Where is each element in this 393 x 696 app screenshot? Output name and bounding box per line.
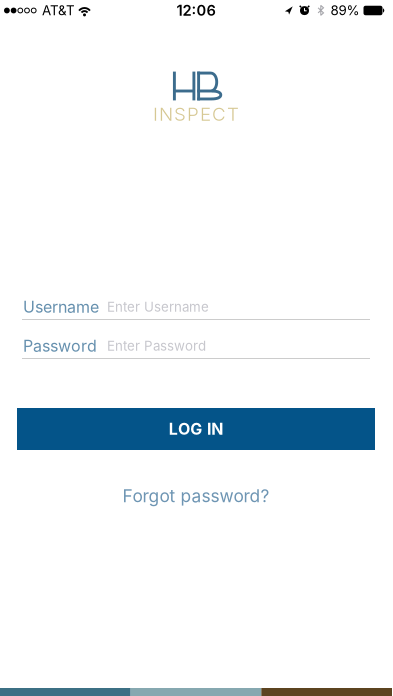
staticText: Enter Username bbox=[107, 299, 209, 315]
staticText: Enter Password bbox=[107, 338, 206, 354]
staticText: E bbox=[200, 103, 211, 125]
staticText: 89% bbox=[330, 3, 359, 18]
staticText: S bbox=[174, 103, 186, 125]
button[interactable]: Password bbox=[0, 338, 392, 359]
staticText: Forgot password? bbox=[122, 486, 269, 506]
staticText: Username bbox=[23, 298, 99, 316]
staticText: N bbox=[159, 103, 173, 125]
button[interactable]: Forgot password? bbox=[122, 486, 269, 506]
staticText: 12:06 bbox=[176, 2, 215, 19]
staticText: C bbox=[212, 103, 226, 125]
staticText: T bbox=[227, 103, 239, 125]
staticText: AT&T bbox=[42, 3, 75, 18]
button[interactable]: Username bbox=[0, 299, 392, 320]
staticText: P bbox=[187, 103, 199, 125]
button[interactable]: LOG IN bbox=[17, 408, 375, 450]
staticText: I bbox=[153, 103, 158, 125]
staticText: LOG IN bbox=[169, 420, 223, 438]
staticText: Password bbox=[23, 337, 97, 355]
